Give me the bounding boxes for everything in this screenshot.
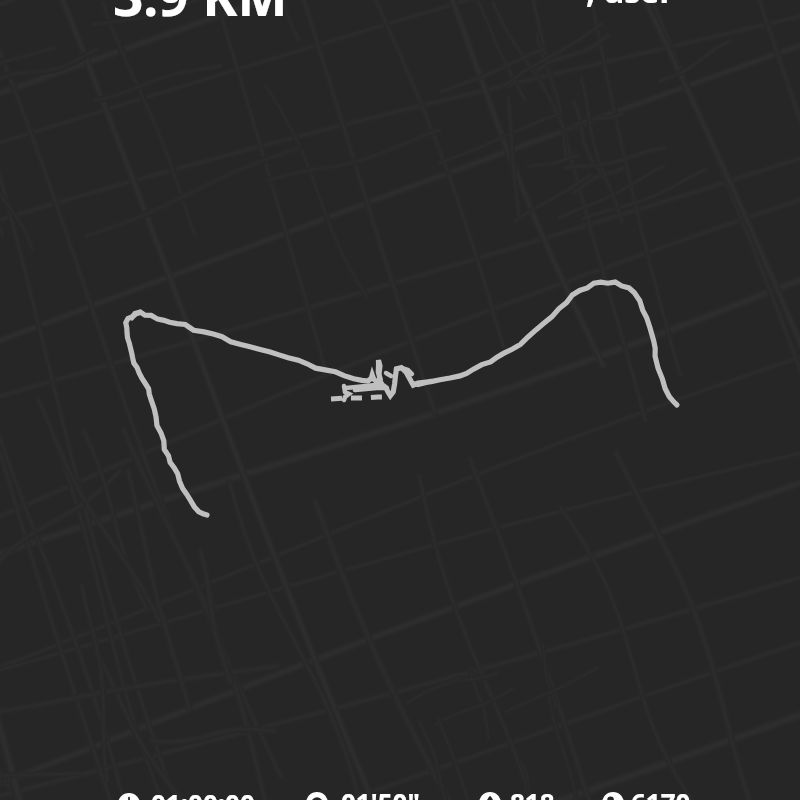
button[interactable]: Pace <box>300 786 454 800</box>
staticText: 01:00:00 <box>151 786 255 800</box>
staticText: 818 <box>510 785 555 800</box>
button[interactable]: 3.9 KM <box>113 0 288 31</box>
staticText: 01'50" <box>341 785 420 800</box>
button[interactable]: , user <box>586 0 674 13</box>
button[interactable]: Steps <box>596 786 744 800</box>
button[interactable]: Duration <box>112 787 265 800</box>
staticText: 6170 <box>631 785 691 800</box>
button[interactable]: Calories <box>473 786 623 800</box>
